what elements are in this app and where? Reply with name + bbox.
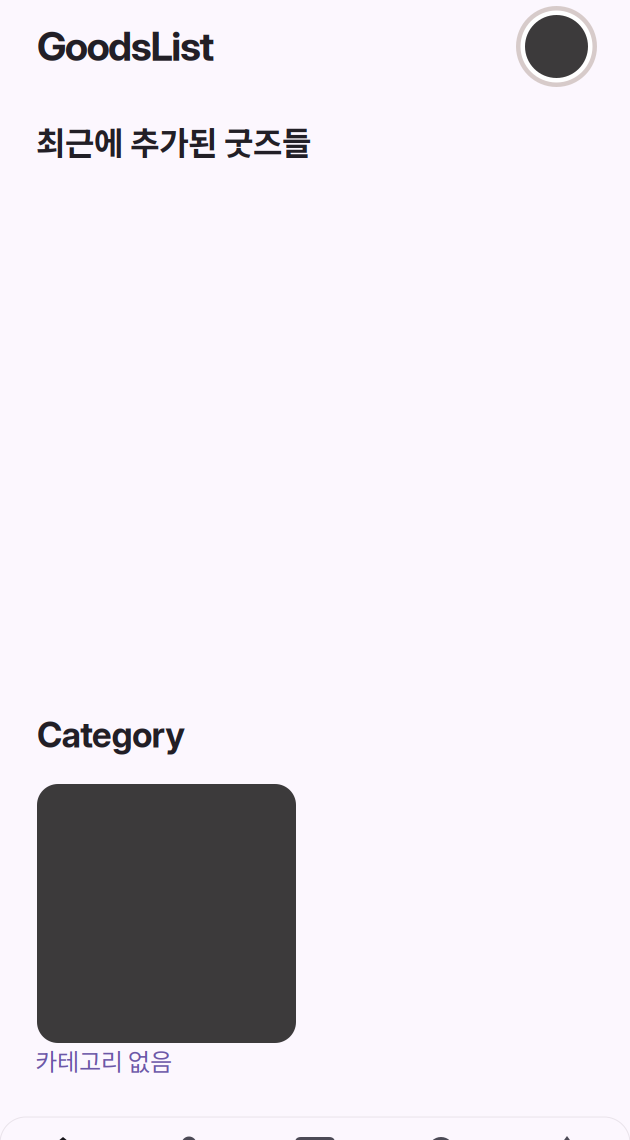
button[interactable]: Goods xyxy=(252,1117,378,1140)
staticText: 카테고리 없음 xyxy=(35,1043,172,1078)
staticText: GoodsList xyxy=(37,22,215,70)
button[interactable]: Upload xyxy=(504,1117,630,1140)
staticText: Category xyxy=(37,714,185,756)
button[interactable]: Search xyxy=(378,1117,504,1140)
button[interactable]: 카테고리 없음 xyxy=(37,784,296,1076)
button[interactable]: Profile xyxy=(516,6,597,87)
staticText: 최근에 추가된 굿즈들 xyxy=(36,118,311,164)
button[interactable]: Profile xyxy=(126,1117,252,1140)
button[interactable]: Home xyxy=(0,1117,126,1140)
